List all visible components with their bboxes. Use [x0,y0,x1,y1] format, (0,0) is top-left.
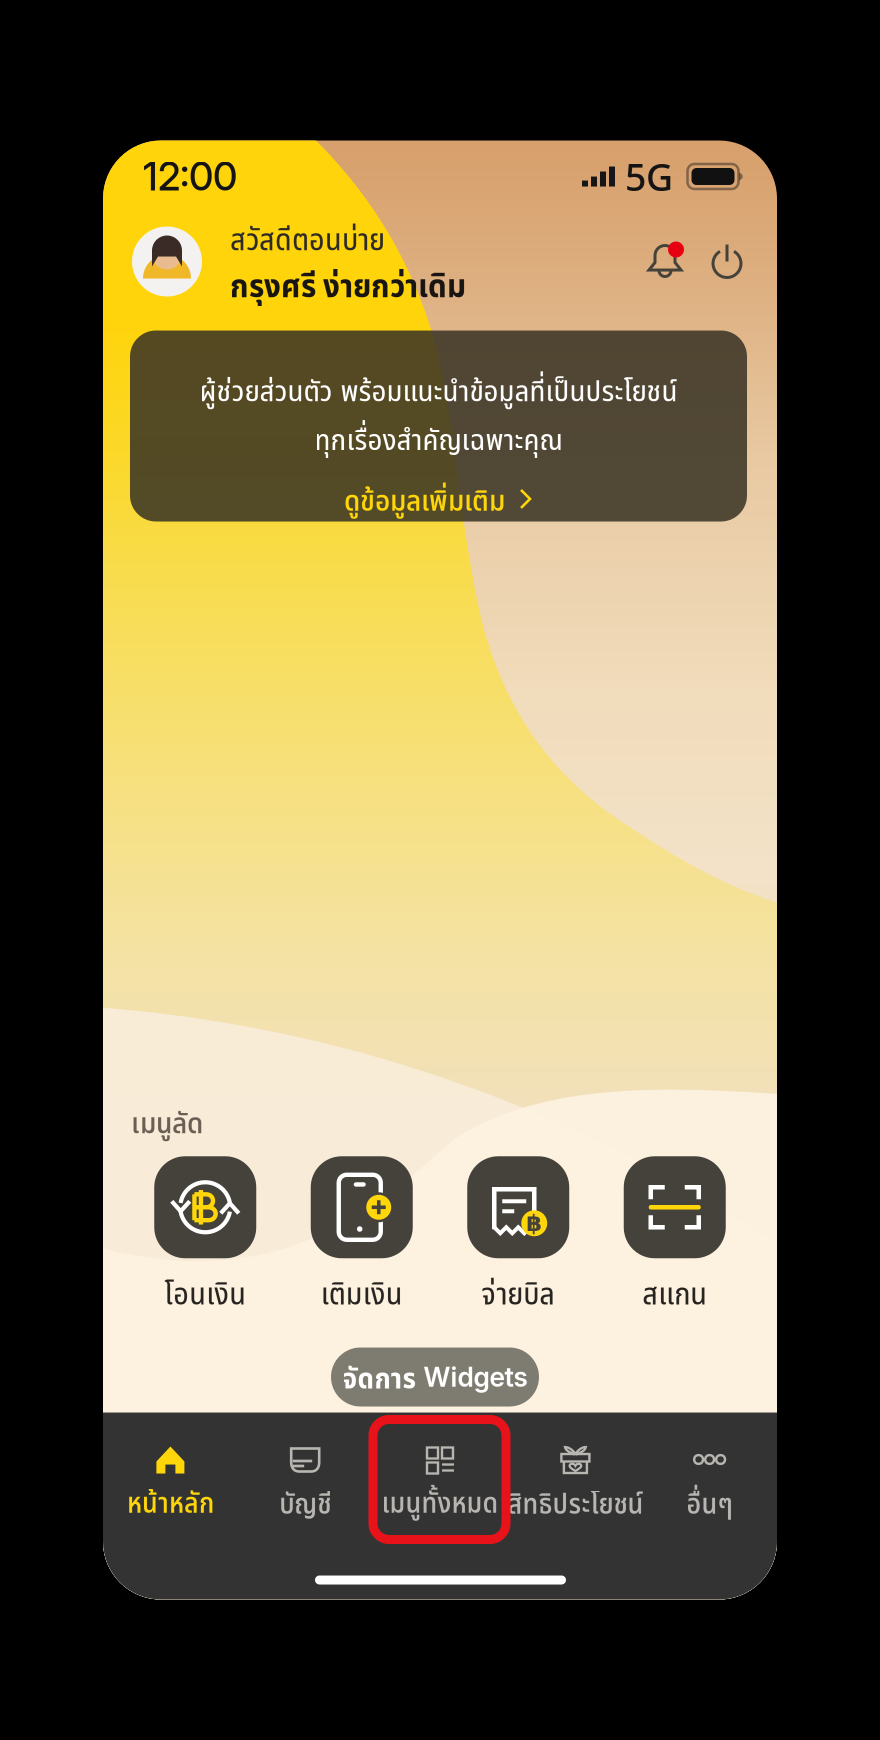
button[interactable]: เติมเงิน [283,1156,440,1314]
staticText: โอนเงิน [164,1270,246,1314]
button[interactable]: โอนเงิน [127,1156,283,1314]
button[interactable]: สิทธิประโยชน์ [507,1442,642,1522]
button[interactable]: Log out [707,241,747,281]
staticText: เติมเงิน [321,1270,403,1314]
staticText: ฿ [526,1210,542,1236]
staticText: สวัสดีตอนบ่าย [230,216,385,260]
button[interactable]: จัดการ [331,1347,539,1406]
staticText: Widgets [423,1361,527,1393]
button[interactable]: Notifications [645,241,685,281]
staticText: บัญชี [279,1482,331,1522]
staticText: ดูข้อมูลเพิ่มเติม [344,478,505,520]
staticText: 12:00 [143,153,237,200]
staticText: ทุกเรื่องสำคัญเฉพาะคุณ [314,417,562,459]
button[interactable]: บัญชี [238,1442,373,1522]
staticText: ผู้ช่วยส่วนตัว พร้อมแนะนำข้อมูลที่เป็นปร… [199,368,677,410]
staticText: เมนูทั้งหมด [381,1481,498,1521]
staticText: สิทธิประโยชน์ [507,1482,643,1522]
button[interactable]: ผู้ช่วยส่วนตัว พร้อมแนะนำข้อมูลที่เป็นปร… [130,330,747,521]
button[interactable]: เมนูทั้งหมด [373,1443,507,1521]
button[interactable]: หน้าหลัก [103,1443,238,1521]
staticText: จ่ายบิล [481,1270,555,1314]
button[interactable]: ฿ [440,1156,596,1314]
staticText: เมนูลัด [131,1100,203,1142]
button[interactable]: สแกน [596,1156,753,1314]
staticText: กรุงศรี ง่ายกว่าเดิม [230,262,466,307]
staticText: 5G [625,152,673,201]
staticText: อื่นๆ [687,1482,733,1522]
staticText: สแกน [642,1270,707,1314]
button[interactable]: อื่นๆ [642,1442,777,1522]
staticText: จัดการ [342,1357,415,1397]
staticText: หน้าหลัก [127,1481,214,1521]
